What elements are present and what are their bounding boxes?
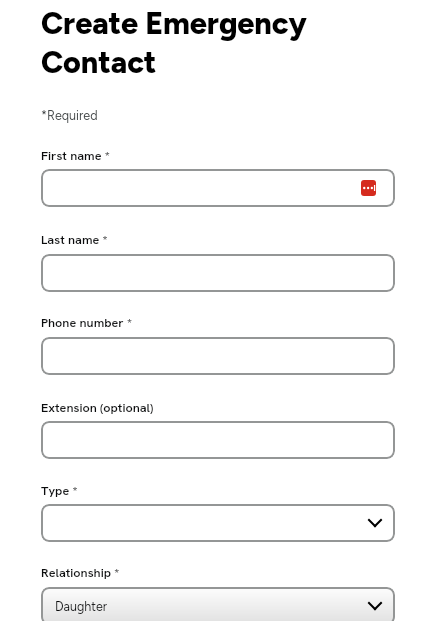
staticText: Relationship * (41, 564, 120, 580)
button[interactable]: Daughter (41, 587, 395, 621)
staticText: Create Emergency Contact (41, 5, 307, 80)
other: Select relationship (368, 602, 382, 610)
staticText: Type * (41, 482, 78, 498)
button[interactable]: Autofill suggestions (361, 180, 376, 196)
staticText: *Required (41, 108, 98, 123)
staticText: Phone number * (41, 314, 132, 330)
button[interactable]: Select type (41, 504, 395, 542)
button[interactable] (41, 254, 395, 292)
button[interactable] (41, 421, 395, 459)
staticText: First name * (41, 147, 110, 163)
button[interactable]: Autofill suggestions (41, 169, 395, 207)
staticText: Extension (optional) (41, 399, 154, 415)
staticText: Last name * (41, 231, 108, 247)
staticText: Daughter (55, 599, 108, 614)
other: Select type (368, 519, 382, 527)
button[interactable] (41, 337, 395, 375)
